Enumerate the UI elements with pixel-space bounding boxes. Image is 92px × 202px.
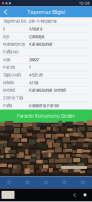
button[interactable]: Zemin Tipi	[0, 94, 92, 102]
button[interactable]: İlçe	[0, 33, 92, 40]
staticText: Tapu Alanı	[3, 73, 21, 77]
button[interactable]: Map tool 1	[0, 176, 18, 188]
staticText: İlçe	[3, 34, 9, 39]
staticText: Ankara	[29, 27, 42, 31]
staticText: Pafta No	[3, 50, 18, 54]
staticText: Kadastral Parsel	[29, 103, 59, 108]
button[interactable]: Map tool 2	[18, 176, 37, 188]
staticText: Mahalle/Köy	[3, 42, 25, 47]
button[interactable]: Mahalle/Köy	[0, 40, 92, 48]
staticText: 28837	[29, 57, 39, 62]
button[interactable]: Tapu Alanı	[0, 71, 92, 79]
staticText: Mevkii	[3, 88, 15, 93]
button[interactable]: Back	[1, 7, 10, 16]
button[interactable]: Map tool 3	[37, 176, 55, 188]
staticText: Parsel	[3, 65, 15, 70]
button[interactable]: Map tool 5	[74, 176, 92, 188]
staticText: Zemin Tipi	[3, 96, 23, 100]
staticText: Taşınmaz Bilgisi	[3, 19, 29, 24]
button[interactable]: Map tool 4	[55, 176, 74, 188]
staticText: Karakusunlar	[29, 42, 53, 47]
staticText: Parselin Konumunu Göster	[17, 113, 75, 119]
staticText: Taşınmaz Bilgisi	[27, 9, 65, 15]
button[interactable]: Parsel	[0, 63, 92, 71]
button[interactable]: Taşınmaz Bilgisi	[0, 17, 92, 25]
staticText: 10:24	[79, 1, 90, 6]
button[interactable]: Mevkii	[0, 86, 92, 94]
staticText: SR-1-N1/2019	[29, 19, 56, 24]
button[interactable]: Parselin Konumunu Göster	[0, 109, 92, 122]
button[interactable]: Ada	[0, 56, 92, 64]
button[interactable]: Back	[70, 188, 80, 201]
button[interactable]: Pafta	[0, 102, 92, 110]
staticText: İl	[3, 27, 5, 31]
staticText: 4521,81	[29, 73, 43, 77]
staticText: Ada	[3, 57, 10, 62]
staticText: Karakusunlar Mevkii	[29, 88, 66, 93]
staticText: 1	[29, 65, 31, 70]
button[interactable]: Pafta No	[0, 48, 92, 56]
staticText: Çankaya	[29, 34, 44, 39]
button[interactable]: Nitelik	[0, 79, 92, 87]
button[interactable]: İl	[0, 25, 92, 33]
button[interactable]: Home	[80, 188, 90, 201]
staticText: Nitelik	[3, 80, 14, 85]
staticText: Arsa	[29, 80, 38, 85]
staticText: Pafta	[3, 103, 12, 108]
